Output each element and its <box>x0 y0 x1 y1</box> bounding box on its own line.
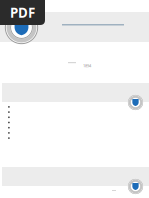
staticText: 1894 <box>83 63 91 68</box>
button[interactable]: PDF <box>0 0 45 25</box>
staticText: PDF <box>10 4 35 21</box>
